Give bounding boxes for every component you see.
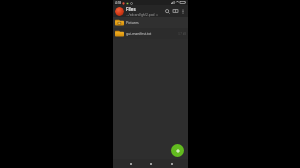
button[interactable]: Account: [115, 7, 124, 16]
button[interactable]: Search: [163, 7, 171, 15]
staticText: 3.7 kB: [178, 32, 186, 36]
button[interactable]: Back: [127, 160, 134, 167]
staticText: gui-manifest.txt: [126, 31, 152, 36]
button[interactable]: Home: [147, 160, 154, 167]
button[interactable]: Recents: [168, 160, 175, 167]
staticText: Pictures: [126, 20, 139, 25]
button[interactable]: More options: [179, 8, 186, 15]
button[interactable]: Create new: [171, 144, 184, 157]
staticText: Files: [126, 6, 136, 12]
staticText: …/sdcard/gh/2.pod: [126, 13, 155, 17]
button[interactable]: gui-manifest.txt: [113, 28, 188, 39]
button[interactable]: Pictures: [113, 17, 188, 28]
button[interactable]: Change view: [171, 7, 179, 15]
staticText: 4:18: [115, 1, 121, 5]
